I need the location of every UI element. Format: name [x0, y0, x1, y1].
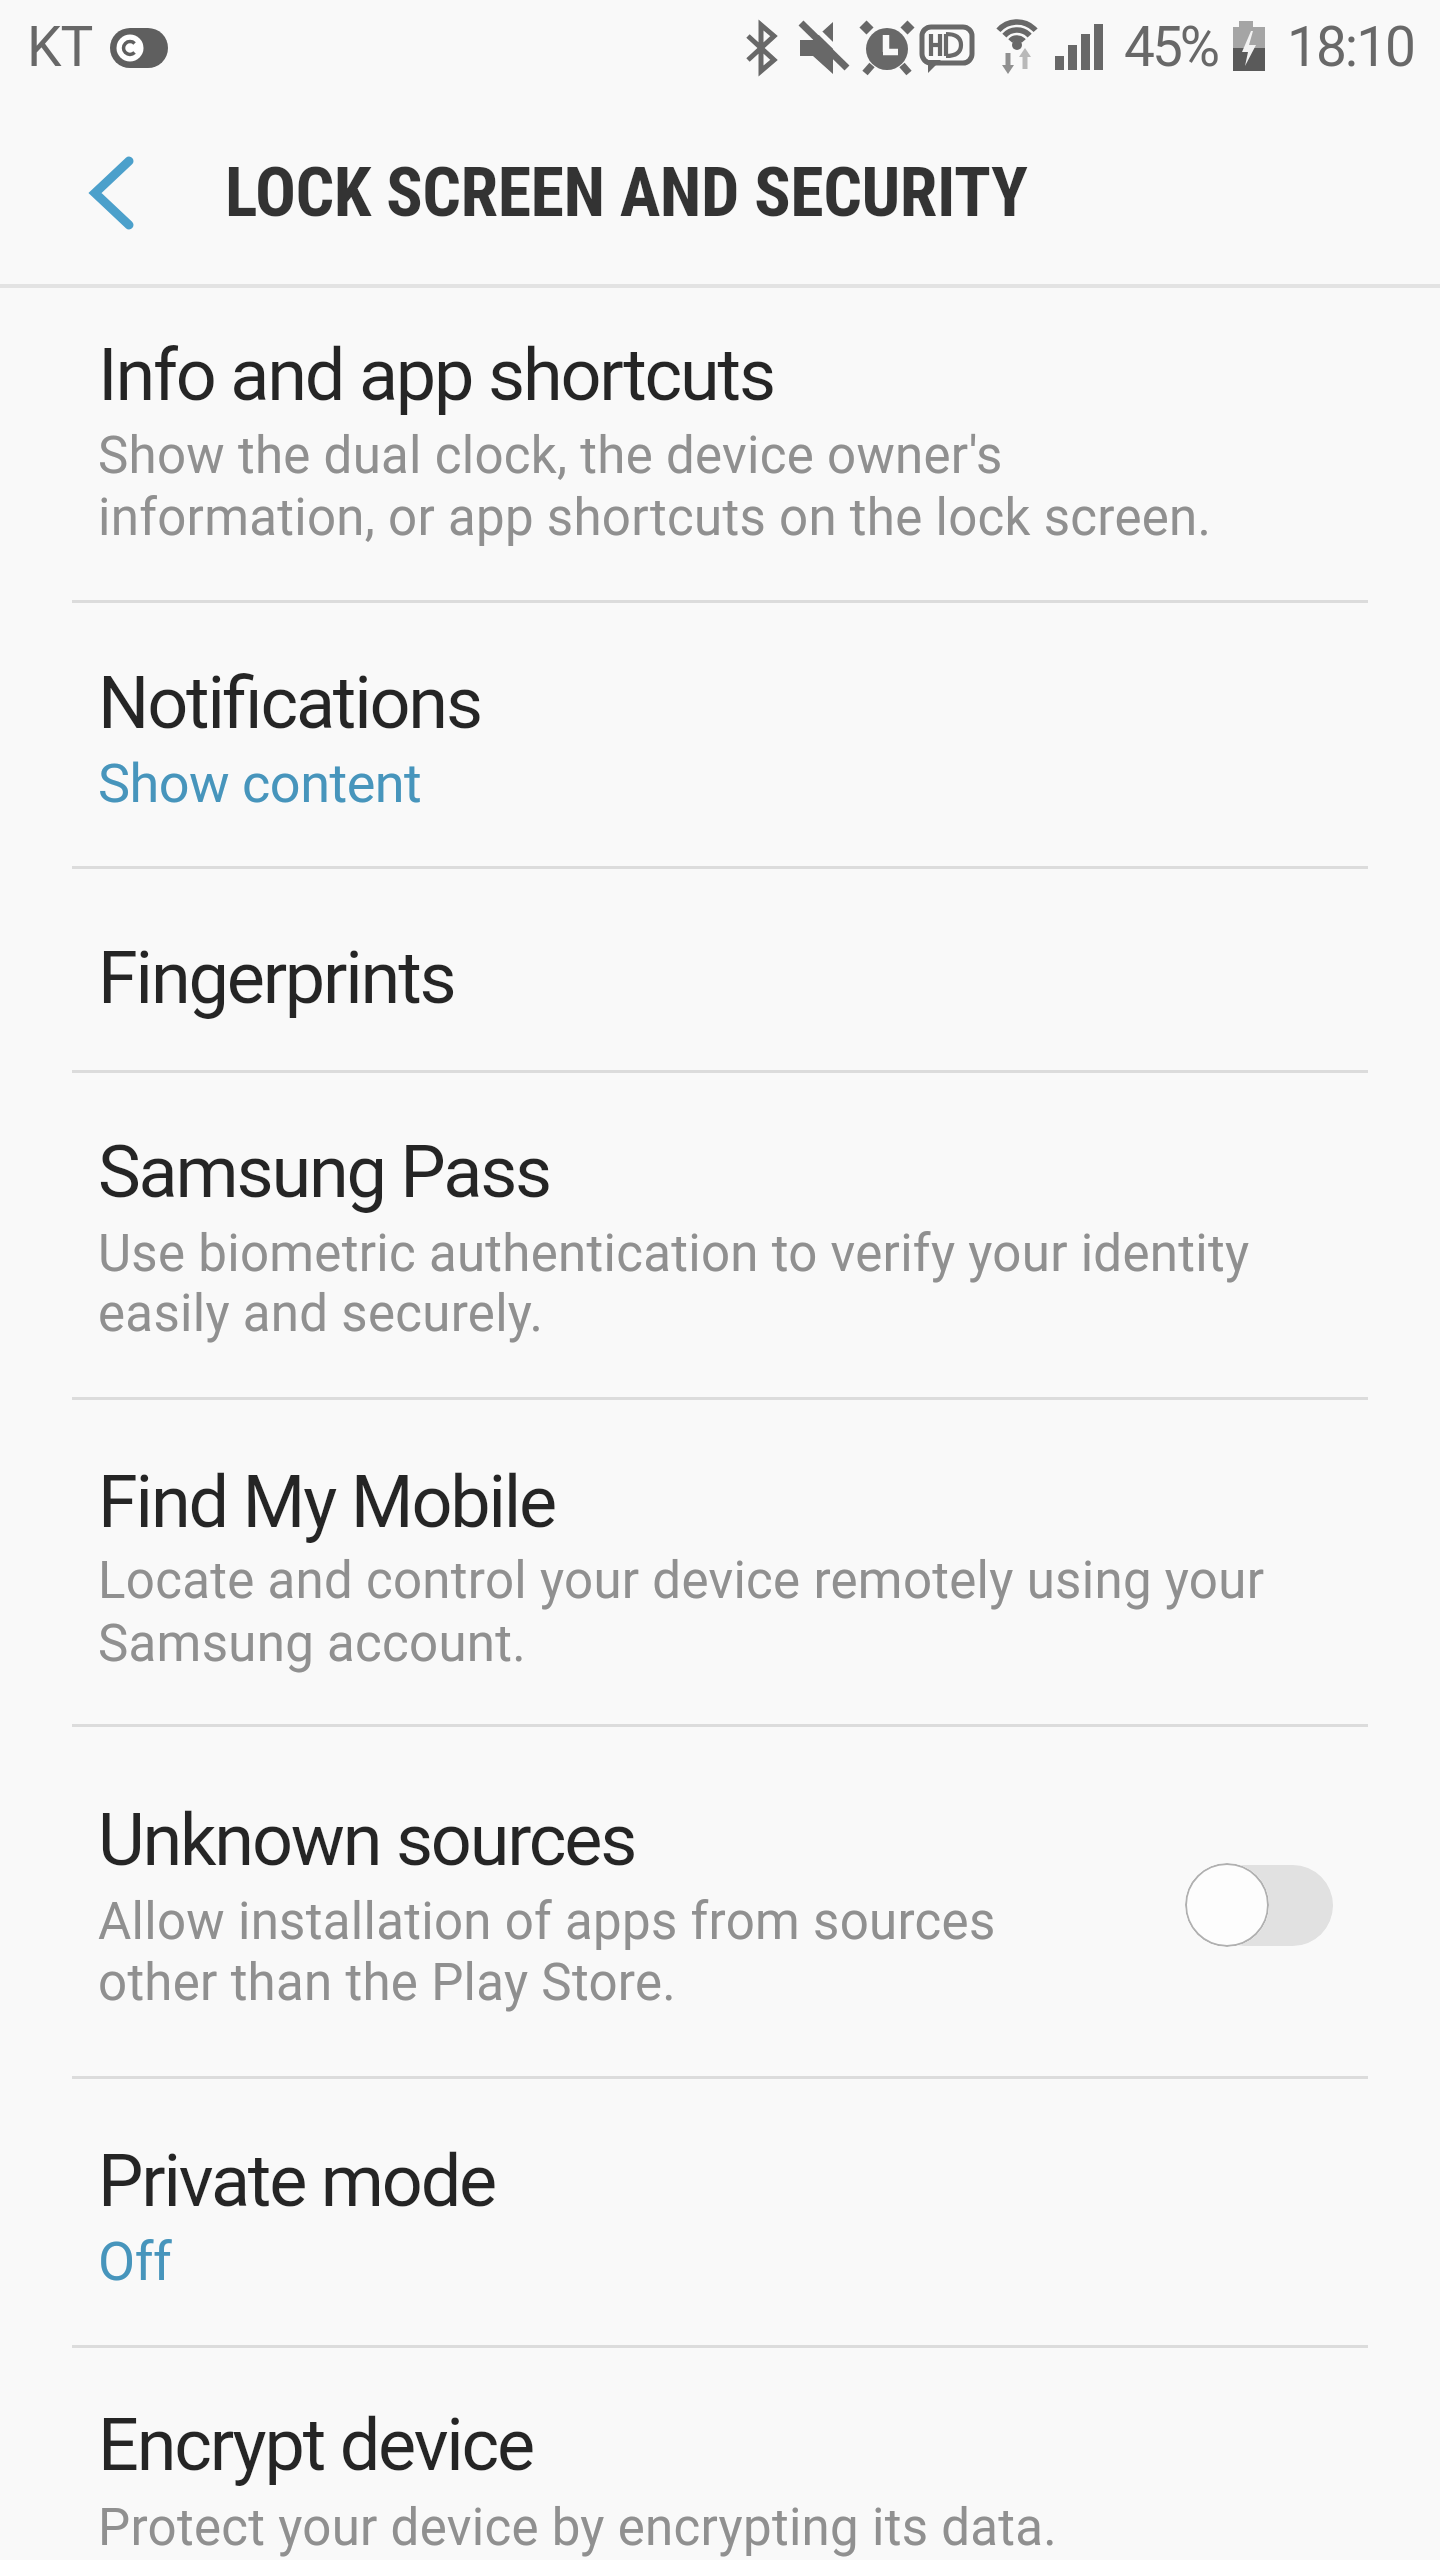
staticText: 18:10: [1287, 15, 1414, 79]
staticText: Protect your device by encrypting its da…: [98, 2498, 1058, 2558]
button[interactable]: Encrypt device: [0, 2346, 1440, 2560]
staticText: Notifications: [98, 661, 481, 745]
button[interactable]: Fingerprints: [0, 867, 1440, 1071]
staticText: 45%: [1124, 15, 1218, 79]
staticText: Locate and control your device remotely …: [98, 1551, 1265, 1611]
staticText: Private mode: [98, 2139, 496, 2223]
button[interactable]: [1180, 1858, 1338, 1952]
staticText: Samsung account.: [98, 1614, 527, 1674]
staticText: Fingerprints: [98, 936, 455, 1020]
staticText: Use biometric authentication to verify y…: [98, 1224, 1250, 1284]
staticText: Encrypt device: [98, 2403, 534, 2487]
staticText: easily and securely.: [98, 1284, 544, 1344]
staticText: information, or app shortcuts on the loc…: [98, 488, 1212, 548]
staticText: Show the dual clock, the device owner's: [98, 426, 1003, 486]
button[interactable]: Private mode: [0, 2077, 1440, 2346]
staticText: Show content: [98, 752, 422, 815]
staticText: other than the Play Store.: [98, 1953, 677, 2013]
staticText: Info and app shortcuts: [98, 333, 774, 417]
button[interactable]: Unknown sources: [0, 1725, 1440, 2077]
button[interactable]: Info and app shortcuts: [0, 288, 1440, 601]
button[interactable]: Notifications: [0, 601, 1440, 867]
staticText: KT: [27, 15, 93, 79]
staticText: LOCK SCREEN AND SECURITY: [225, 153, 1028, 233]
button[interactable]: [0, 96, 220, 286]
staticText: Allow installation of apps from sources: [98, 1892, 996, 1952]
button[interactable]: Find My Mobile: [0, 1398, 1440, 1725]
staticText: Find My Mobile: [98, 1460, 556, 1544]
button[interactable]: Samsung Pass: [0, 1071, 1440, 1398]
staticText: Samsung Pass: [98, 1130, 551, 1214]
staticText: Unknown sources: [98, 1798, 636, 1882]
staticText: Off: [98, 2230, 172, 2293]
